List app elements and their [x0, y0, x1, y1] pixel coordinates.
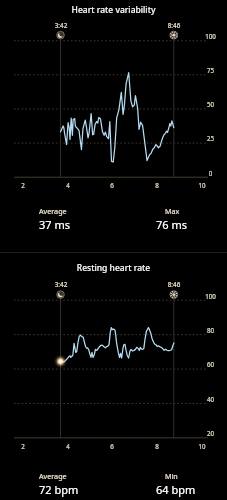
staticText: 100 — [200, 292, 221, 300]
staticText: 6 — [102, 442, 122, 450]
staticText: 2 — [13, 181, 33, 189]
button[interactable]: Average — [39, 471, 79, 497]
staticText: Heart rate variability — [0, 4, 227, 16]
staticText: Average — [39, 471, 67, 481]
staticText: 75 — [200, 66, 221, 74]
staticText: 20 — [200, 429, 221, 437]
staticText: 100 — [200, 32, 221, 40]
staticText: 25 — [200, 134, 221, 142]
button[interactable]: Max — [156, 206, 187, 232]
staticText: 3:42 — [48, 21, 74, 30]
button[interactable]: Wake 8:46 — [168, 29, 180, 41]
staticText: 8 — [147, 442, 167, 450]
staticText: Average — [39, 206, 67, 216]
staticText: Resting heart rate — [0, 262, 227, 274]
staticText: 76 ms — [156, 217, 187, 232]
staticText: 8:46 — [161, 21, 187, 30]
staticText: 72 bpm — [39, 482, 79, 497]
button[interactable]: Average — [39, 206, 70, 232]
staticText: 8:46 — [161, 280, 187, 289]
staticText: 0 — [200, 169, 221, 177]
button[interactable]: Sleep start 3:42 — [55, 29, 67, 41]
staticText: 8 — [147, 181, 167, 189]
staticText: 2 — [13, 442, 33, 450]
staticText: Min — [165, 471, 178, 481]
button[interactable]: Wake 8:46 — [168, 289, 180, 301]
staticText: Max — [165, 206, 180, 216]
staticText: 10 — [192, 181, 212, 189]
button[interactable]: Heart rate variability — [0, 0, 227, 252]
staticText: 10 — [192, 442, 212, 450]
staticText: 3:42 — [48, 280, 74, 289]
staticText: 60 — [200, 360, 221, 368]
staticText: 50 — [200, 100, 221, 108]
button[interactable]: Min — [156, 471, 196, 497]
staticText: 4 — [58, 181, 78, 189]
staticText: 4 — [58, 442, 78, 450]
staticText: 6 — [102, 181, 122, 189]
button[interactable]: Resting heart rate — [0, 253, 227, 500]
staticText: 40 — [200, 395, 221, 403]
staticText: 80 — [200, 326, 221, 334]
button[interactable]: Sleep start 3:42 — [55, 289, 67, 301]
staticText: 64 bpm — [156, 482, 196, 497]
staticText: 37 ms — [39, 217, 70, 232]
